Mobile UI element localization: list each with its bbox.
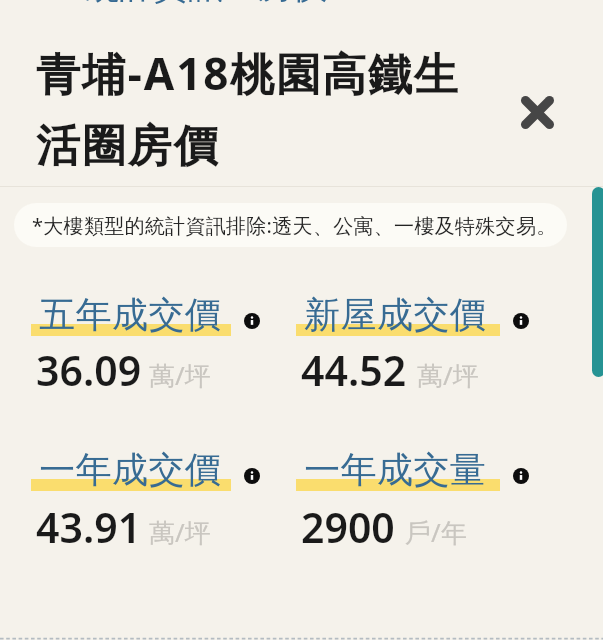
staticText: 新屋成交價 [304, 292, 486, 337]
staticText: 2900 [301, 499, 395, 555]
staticText: 36.09 [36, 342, 142, 398]
staticText: 活圈房價 [36, 119, 220, 174]
staticText: 44.52 [301, 342, 407, 398]
staticText: 43.91 [36, 499, 142, 555]
button[interactable]: More information [239, 308, 265, 334]
button[interactable]: 一年成交量 [296, 445, 534, 493]
button[interactable]: Close [507, 82, 567, 142]
button[interactable]: More information [508, 308, 534, 334]
staticText: 萬/坪 [417, 357, 479, 393]
staticText: 萬/坪 [149, 514, 211, 550]
staticText: 一年成交量 [304, 447, 486, 492]
staticText: 戶/年 [405, 514, 467, 550]
button[interactable]: 新屋成交價 [296, 290, 534, 338]
staticText: 青埔-A18桃園高鐵生 [36, 43, 460, 103]
button[interactable]: 五年成交價 [31, 290, 265, 338]
staticText: *大樓類型的統計資訊排除:透天、公寓、一樓及特殊交易。 [32, 212, 557, 239]
staticText: 五年成交價 [39, 292, 221, 337]
button[interactable]: More information [239, 463, 265, 489]
staticText: 統計資訊區房價 [85, 0, 327, 8]
button[interactable]: *大樓類型的統計資訊排除:透天、公寓、一樓及特殊交易。 [14, 203, 567, 247]
button[interactable]: More information [508, 463, 534, 489]
button[interactable]: 一年成交價 [31, 445, 265, 493]
staticText: 一年成交價 [39, 447, 221, 492]
staticText: 萬/坪 [149, 357, 211, 393]
